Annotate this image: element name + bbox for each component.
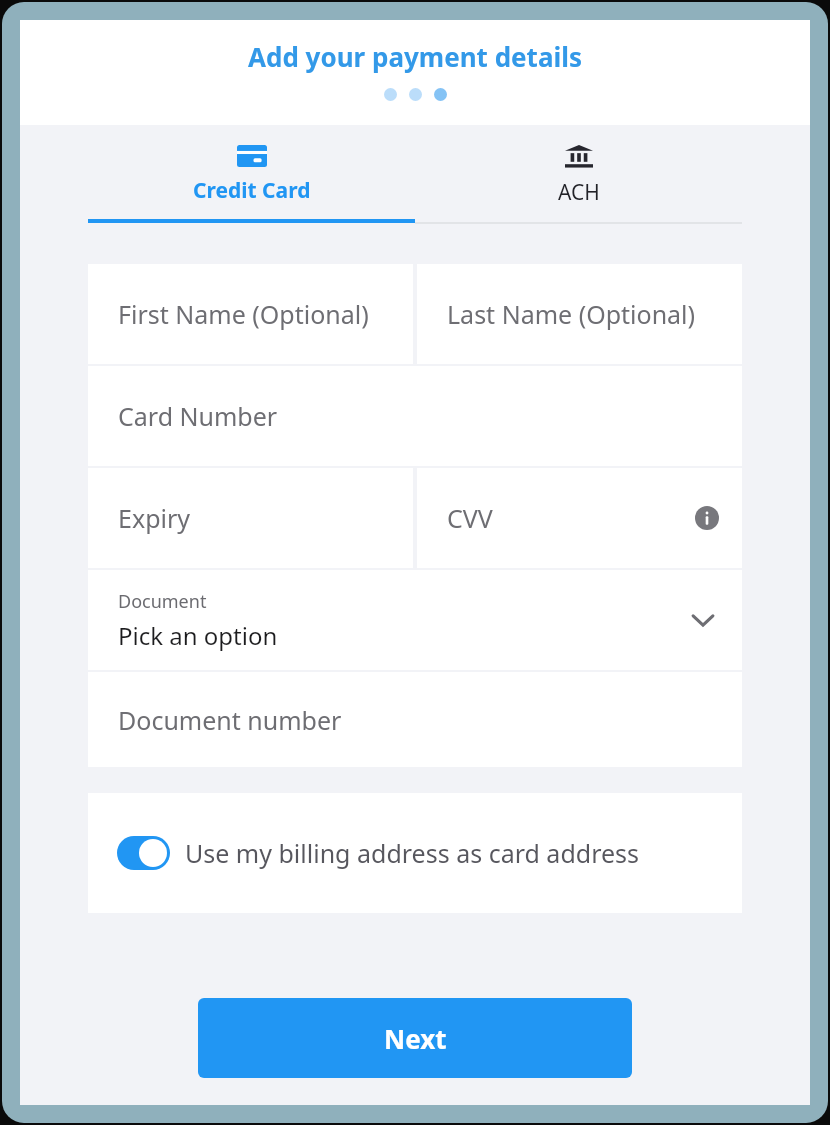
other: Credit card xyxy=(237,145,267,167)
button[interactable]: CVV info xyxy=(695,506,719,530)
button[interactable]: Document xyxy=(88,570,742,670)
other: ACH bank xyxy=(565,145,593,169)
staticText: First Name (Optional) xyxy=(118,297,369,331)
staticText: Card Number xyxy=(118,399,278,433)
button[interactable]: Use my billing address toggle, on xyxy=(88,793,742,913)
button[interactable]: Use my billing address toggle, on xyxy=(117,836,170,870)
button[interactable]: Expiry xyxy=(88,468,413,568)
button[interactable]: Next xyxy=(198,998,632,1078)
other: Open document options xyxy=(690,607,716,633)
button[interactable]: CVV xyxy=(417,468,742,568)
staticText: Expiry xyxy=(118,501,191,535)
staticText: Use my billing address as card address xyxy=(185,836,640,870)
button[interactable]: Document number xyxy=(88,672,742,767)
staticText: Document xyxy=(118,589,207,614)
staticText: Add your payment details xyxy=(20,39,810,74)
staticText: Document number xyxy=(118,703,342,737)
button[interactable]: Credit card xyxy=(88,145,415,223)
button[interactable]: Card Number xyxy=(88,366,742,466)
button[interactable]: First Name (Optional) xyxy=(88,264,413,364)
staticText: Next xyxy=(384,1021,447,1056)
staticText: Pick an option xyxy=(118,619,278,652)
staticText: ACH xyxy=(558,178,600,207)
staticText: Credit Card xyxy=(193,176,311,205)
button[interactable]: Last Name (Optional) xyxy=(417,264,742,364)
staticText: Last Name (Optional) xyxy=(447,297,696,331)
button[interactable]: ACH bank xyxy=(415,145,742,224)
staticText: CVV xyxy=(447,501,493,535)
